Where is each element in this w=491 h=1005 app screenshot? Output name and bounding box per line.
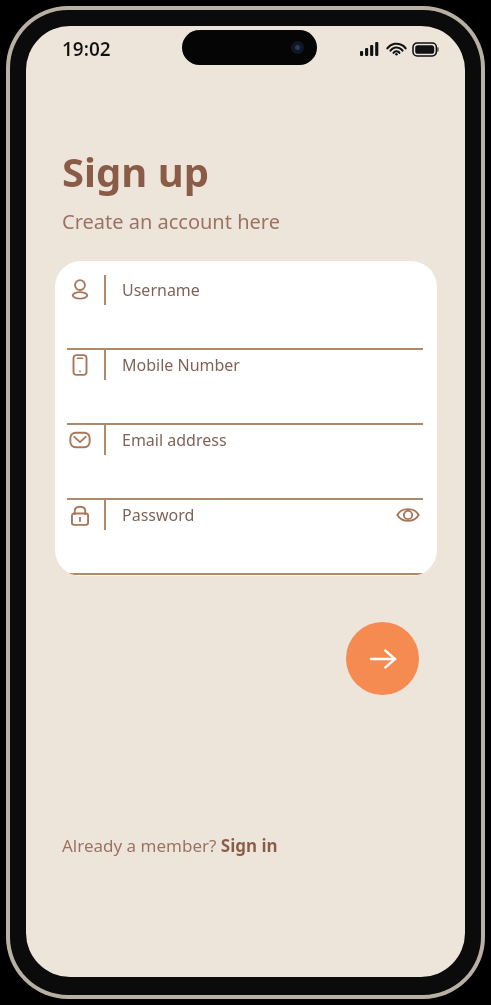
button[interactable]: Email address bbox=[55, 425, 437, 500]
staticText: Create an account here bbox=[62, 208, 280, 235]
staticText: Email address bbox=[122, 429, 227, 451]
staticText: Password bbox=[122, 504, 195, 526]
button[interactable]: Show password bbox=[395, 502, 421, 528]
button[interactable]: Password bbox=[55, 500, 437, 575]
staticText: Already a member? Sign in bbox=[62, 834, 278, 857]
button[interactable]: Mobile Number bbox=[55, 350, 437, 425]
staticText: Mobile Number bbox=[122, 354, 240, 376]
button[interactable]: Continue bbox=[346, 622, 419, 695]
button[interactable]: Already a member? Sign in bbox=[62, 834, 278, 857]
staticText: Username bbox=[122, 279, 200, 301]
button[interactable]: Username bbox=[55, 275, 437, 350]
staticText: Sign up bbox=[62, 144, 209, 198]
staticText: 19:02 bbox=[62, 36, 111, 62]
